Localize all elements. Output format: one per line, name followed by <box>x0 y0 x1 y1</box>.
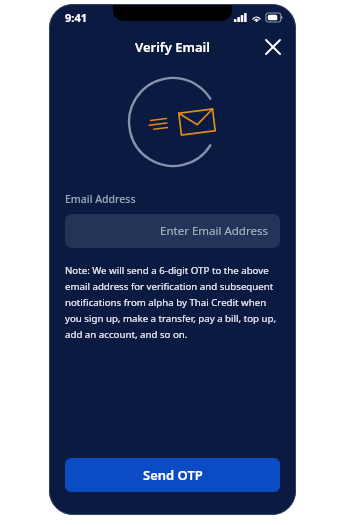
staticText: Verify Email <box>135 38 210 56</box>
staticText: Enter Email Address <box>160 223 268 239</box>
staticText: Email Address <box>65 192 136 206</box>
staticText: 9:41 <box>65 10 87 25</box>
staticText: Note: We will send a 6-digit OTP to the … <box>65 264 280 341</box>
button[interactable]: Close <box>260 34 286 60</box>
button[interactable]: Send OTP <box>65 458 280 492</box>
button[interactable]: Enter Email Address <box>65 214 280 248</box>
staticText: Send OTP <box>143 466 203 484</box>
